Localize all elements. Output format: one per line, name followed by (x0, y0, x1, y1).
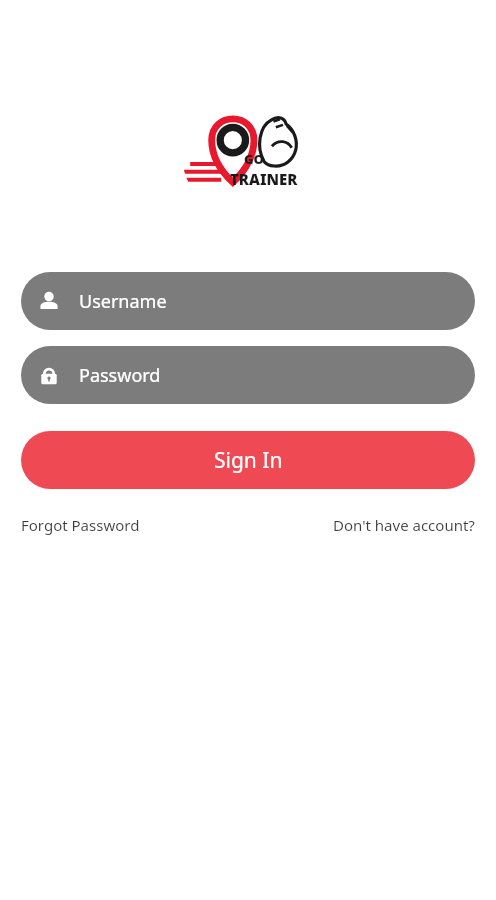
staticText: Sign In (214, 446, 283, 475)
staticText: TRAINER (230, 169, 298, 189)
staticText: GO (244, 150, 264, 168)
staticText: Don't have account? (333, 515, 475, 535)
button[interactable]: Password (21, 346, 475, 404)
other: Password (38, 364, 60, 386)
button[interactable]: Sign In (21, 431, 475, 489)
other: Username (38, 290, 60, 312)
button[interactable]: Forgot Password (21, 515, 140, 535)
staticText: Forgot Password (21, 515, 140, 535)
staticText: Username (79, 289, 167, 314)
staticText: Password (79, 363, 161, 388)
button[interactable]: Don't have account? (333, 515, 475, 535)
button[interactable]: Username (21, 272, 475, 330)
